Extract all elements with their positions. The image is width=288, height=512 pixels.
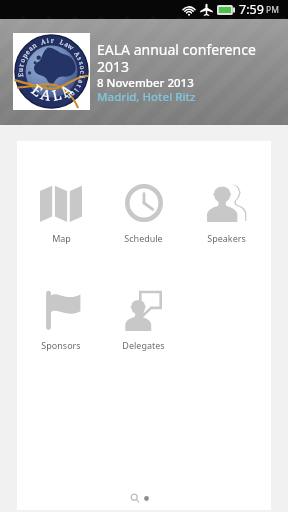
staticText: Schedule — [124, 232, 163, 244]
staticText: 8 November 2013 — [97, 75, 194, 91]
staticText: Delegates — [122, 339, 165, 351]
button[interactable]: Delegates — [102, 289, 185, 351]
staticText: Madrid, Hotel Ritz — [97, 89, 196, 105]
staticText: 7:59 — [239, 1, 264, 18]
button[interactable]: Search — [130, 493, 140, 503]
button[interactable]: Sponsors — [20, 289, 102, 351]
staticText: EALA annual conference 2013 — [97, 40, 269, 76]
button[interactable]: Schedule — [102, 182, 185, 244]
button[interactable]: Map — [20, 182, 102, 244]
button[interactable]: Speakers — [185, 182, 268, 244]
staticText: Speakers — [207, 232, 246, 244]
staticText: Sponsors — [41, 339, 81, 351]
staticText: Map — [52, 232, 71, 244]
staticText: PM — [266, 4, 279, 16]
